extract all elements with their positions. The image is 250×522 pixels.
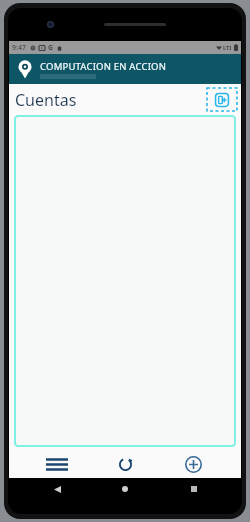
button[interactable]: Agregar	[173, 451, 213, 477]
button[interactable]: Actualizar	[105, 451, 145, 477]
button[interactable]: Back	[37, 479, 77, 499]
button[interactable]: Home	[105, 479, 145, 499]
staticText: COMPUTACION EN ACCION	[40, 60, 167, 73]
staticText: 9:47	[12, 43, 26, 53]
button[interactable]: Menu	[37, 451, 77, 477]
staticText: LTI	[223, 44, 232, 51]
button[interactable]	[14, 115, 236, 447]
other: Logo	[14, 58, 36, 80]
button[interactable]: Nueva cuenta	[207, 88, 237, 111]
staticText: Cuentas	[15, 89, 77, 111]
staticText: G	[48, 43, 54, 53]
button[interactable]: Recents	[174, 479, 214, 499]
